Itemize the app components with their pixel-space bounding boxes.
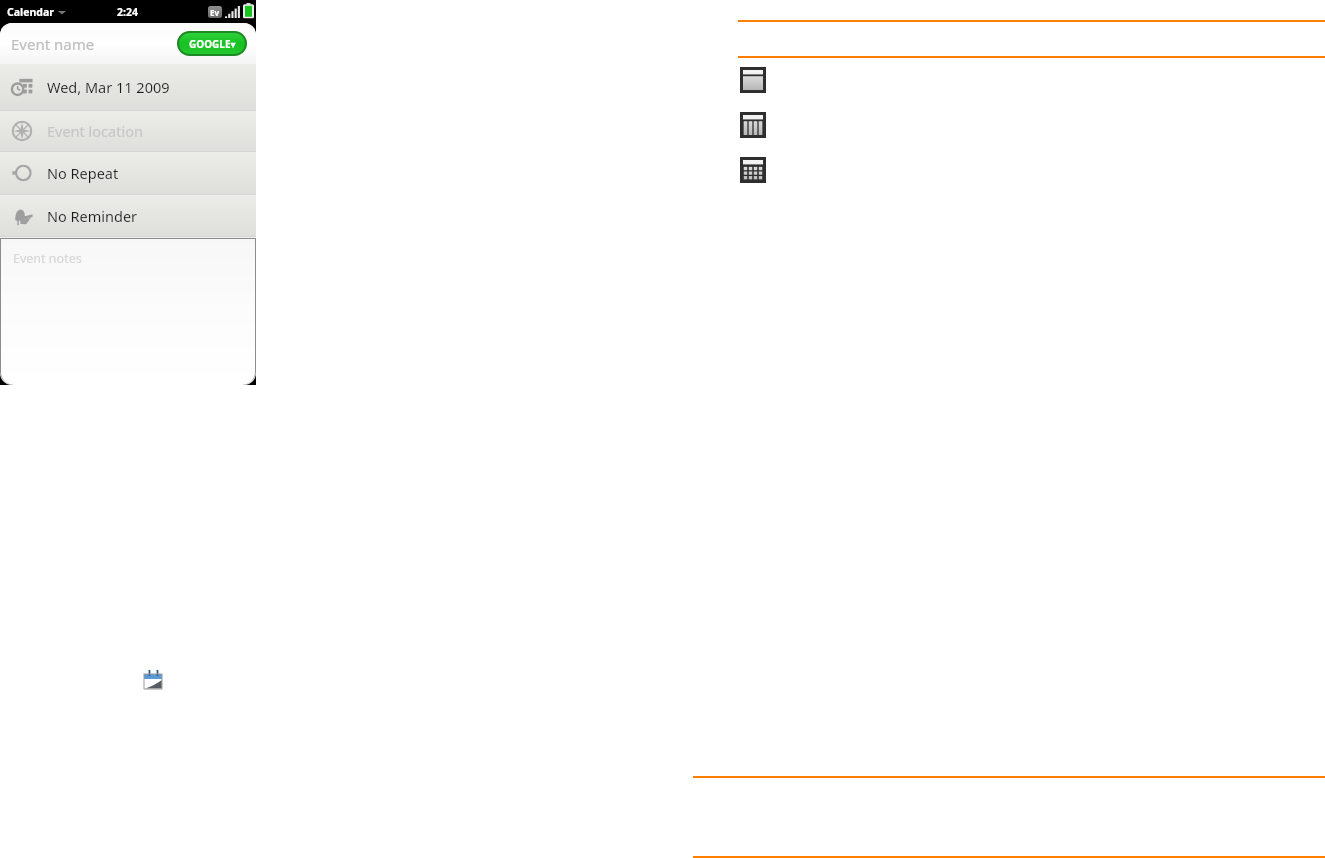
button[interactable]: Month view <box>740 157 766 183</box>
button[interactable]: No Reminder <box>0 195 256 236</box>
staticText: Event name <box>11 34 95 54</box>
staticText: Event notes <box>13 250 82 267</box>
button[interactable]: Event location <box>0 111 256 151</box>
button[interactable]: Day view <box>740 67 766 93</box>
staticText: 2:24 <box>117 5 138 19</box>
button[interactable]: Week view <box>740 112 766 138</box>
staticText: Event location <box>47 121 143 141</box>
staticText: No Reminder <box>47 206 138 226</box>
staticText: Ev <box>210 7 220 18</box>
staticText: GOOGLE▾ <box>189 37 236 51</box>
button[interactable]: Wed, Mar 11 2009 <box>0 64 256 110</box>
button[interactable]: Calendar <box>143 670 163 690</box>
button[interactable]: Event name <box>0 23 256 64</box>
button[interactable]: Calendar <box>7 5 66 19</box>
button[interactable]: GOOGLE▾ <box>179 33 245 54</box>
staticText: Calendar <box>7 5 54 19</box>
button[interactable]: Event notes <box>1 239 255 385</box>
staticText: Wed, Mar 11 2009 <box>47 77 170 97</box>
button[interactable]: No Repeat <box>0 152 256 194</box>
staticText: No Repeat <box>47 163 119 183</box>
